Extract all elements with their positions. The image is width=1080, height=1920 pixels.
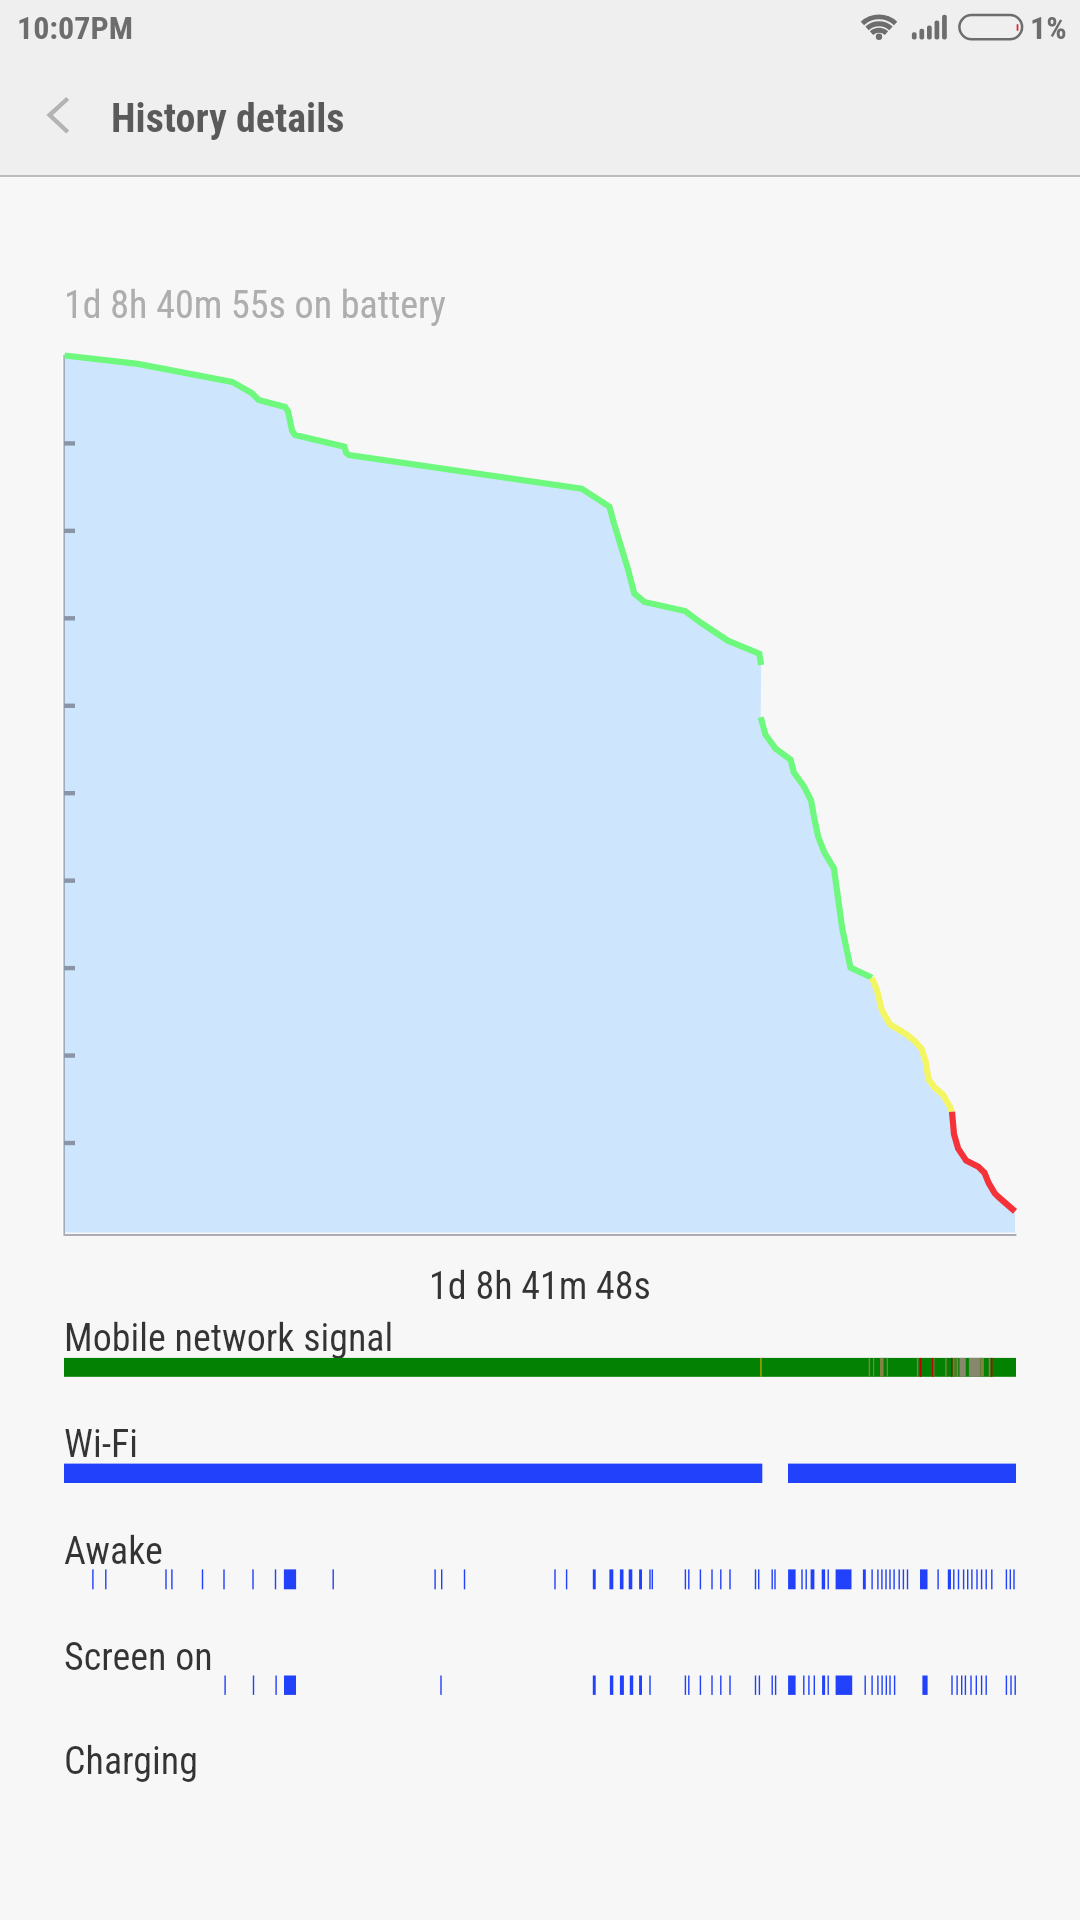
button[interactable] bbox=[0, 1521, 1080, 1617]
staticText: History details bbox=[111, 95, 345, 142]
button[interactable] bbox=[0, 1731, 1080, 1827]
staticText: Wi-Fi bbox=[64, 1422, 139, 1467]
staticText: 1d 8h 40m 55s on battery bbox=[64, 283, 446, 328]
button[interactable] bbox=[0, 1414, 1080, 1510]
staticText: Awake bbox=[64, 1529, 163, 1574]
staticText: Mobile network signal bbox=[64, 1316, 394, 1361]
button[interactable] bbox=[0, 1308, 1080, 1404]
button[interactable] bbox=[0, 1627, 1080, 1723]
button[interactable]: Battery level graph bbox=[40, 270, 1040, 1250]
staticText: 1d 8h 41m 48s bbox=[0, 1264, 1080, 1309]
staticText: 1% bbox=[1030, 9, 1067, 47]
button[interactable]: Back bbox=[14, 77, 90, 153]
staticText: Screen on bbox=[64, 1635, 213, 1680]
staticText: Charging bbox=[64, 1739, 198, 1784]
staticText: 10:07PM bbox=[17, 9, 133, 47]
